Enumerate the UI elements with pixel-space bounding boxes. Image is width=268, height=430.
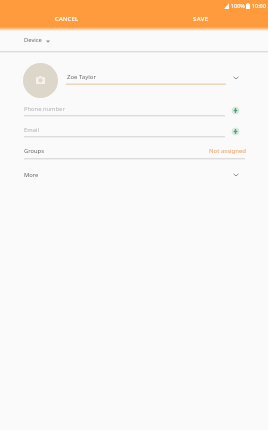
staticText: Device [24,36,42,44]
staticText: SAVE [193,15,209,23]
button[interactable]: Add Email [229,125,242,138]
button[interactable]: Email [0,122,268,138]
staticText: CANCEL [55,15,79,23]
staticText: Phone number [24,105,65,113]
button[interactable]: CANCEL [0,0,134,27]
staticText: Groups [24,147,44,155]
button[interactable]: SAVE [134,0,268,27]
staticText: 100% [231,2,245,9]
button[interactable]: Zoe Taylor [66,72,225,85]
staticText: Zoe Taylor [67,73,96,81]
button[interactable]: More [0,166,268,183]
button[interactable]: Expand more fields [229,168,242,181]
button[interactable]: Groups [0,143,268,158]
button[interactable]: Add Phone number [229,104,242,117]
button[interactable]: Device [24,36,50,44]
staticText: Email [24,126,39,134]
staticText: 10:00 [252,2,266,9]
button[interactable]: Add contact photo [23,63,58,98]
staticText: More [24,171,39,179]
button[interactable]: Expand name fields [229,71,242,84]
staticText: Not assigned [209,147,247,155]
button[interactable]: Phone number [0,101,268,117]
